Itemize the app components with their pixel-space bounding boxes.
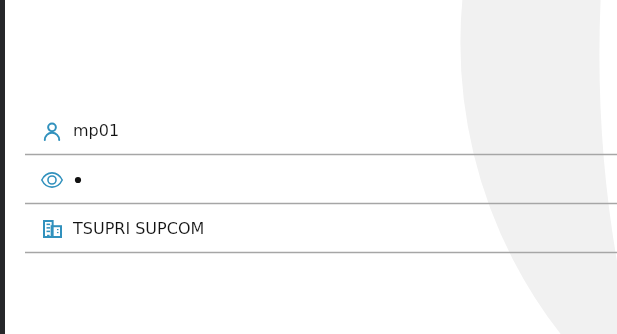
other: User name [43,123,61,140]
other: Company [43,220,62,238]
button[interactable]: Show password [0,155,617,204]
button[interactable]: User name [0,106,617,155]
button[interactable]: Company [0,204,617,253]
other: Show password [41,172,63,188]
staticText: TSUPRI SUPCOM [73,219,205,238]
staticText: mp01 [73,121,120,140]
